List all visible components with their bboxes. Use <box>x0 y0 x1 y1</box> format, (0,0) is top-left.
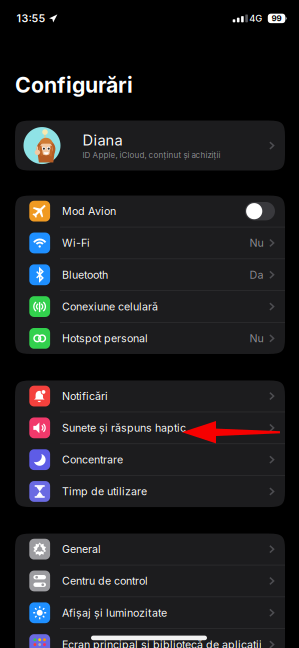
staticText: Da <box>249 268 263 281</box>
staticText: Afișaj și luminozitate <box>62 606 167 619</box>
staticText: Configurări <box>15 72 133 98</box>
staticText: Mod Avion <box>62 205 116 217</box>
staticText: General <box>62 543 101 555</box>
staticText: Ecran principal și bibliotecă de aplicaț… <box>62 638 262 648</box>
staticText: Notificări <box>62 390 108 402</box>
staticText: Nu <box>249 237 263 249</box>
staticText: ID Apple, iCloud, conținut și achiziții <box>82 150 220 160</box>
staticText: Nu <box>249 332 263 345</box>
staticText: Wi-Fi <box>62 237 90 249</box>
staticText: 13:55 <box>16 12 45 25</box>
staticText: Diana <box>82 131 122 149</box>
button[interactable]: Diana <box>15 121 285 171</box>
staticText: 99 <box>272 14 282 23</box>
staticText: Timp de utilizare <box>62 485 147 498</box>
staticText: Bluetooth <box>62 268 108 281</box>
staticText: 4G <box>249 13 262 24</box>
staticText: Centru de control <box>62 575 148 587</box>
staticText: Sunete și răspuns haptic <box>62 422 186 434</box>
staticText: Conexiune celulară <box>62 300 158 313</box>
staticText: Hotspot personal <box>62 332 148 345</box>
staticText: Concentrare <box>62 453 123 466</box>
